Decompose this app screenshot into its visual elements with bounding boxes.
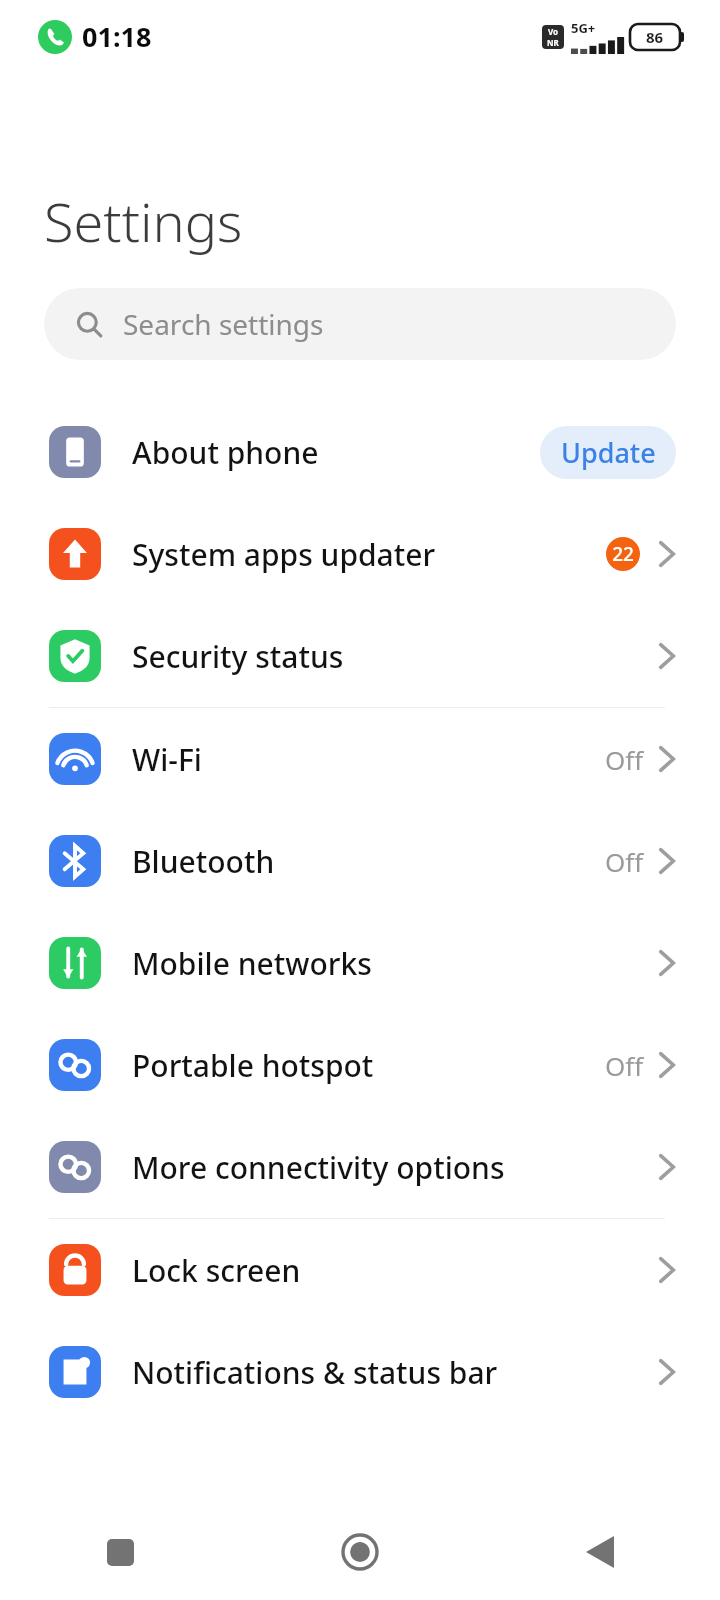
staticText: Off <box>605 1048 644 1083</box>
staticText: Security status <box>132 636 658 677</box>
staticText: Wi-Fi <box>132 739 605 780</box>
button[interactable]: Back <box>480 1504 720 1600</box>
staticText: Notifications & status bar <box>132 1352 658 1393</box>
staticText: About phone <box>132 432 540 473</box>
staticText: Portable hotspot <box>132 1045 605 1086</box>
staticText: Update <box>561 434 656 471</box>
staticText: Search settings <box>123 305 324 343</box>
staticText: Bluetooth <box>132 841 605 882</box>
button[interactable]: Lock screen <box>0 1219 720 1321</box>
button[interactable]: Mobile networks <box>0 912 720 1014</box>
staticText: Off <box>605 844 644 879</box>
staticText: 5G+ <box>571 19 596 37</box>
staticText: 22 <box>612 541 634 567</box>
staticText: System apps updater <box>132 534 606 575</box>
button[interactable]: About phone <box>0 401 720 503</box>
button[interactable]: Home <box>240 1504 480 1600</box>
staticText: Mobile networks <box>132 943 658 984</box>
staticText: 01:18 <box>82 18 152 55</box>
button[interactable]: Recent apps <box>0 1504 240 1600</box>
button[interactable]: More connectivity options <box>0 1116 720 1218</box>
staticText: Settings <box>44 184 243 258</box>
button[interactable]: Wi-Fi <box>0 708 720 810</box>
staticText: Off <box>605 742 644 777</box>
button[interactable]: Update <box>540 426 676 479</box>
button[interactable]: Bluetooth <box>0 810 720 912</box>
staticText: NR <box>547 37 559 48</box>
staticText: More connectivity options <box>132 1147 658 1188</box>
staticText: 86 <box>646 27 664 47</box>
button[interactable]: Security status <box>0 605 720 707</box>
button[interactable]: System apps updater <box>0 503 720 605</box>
button[interactable]: Search settings <box>44 288 676 360</box>
staticText: Vo <box>548 26 559 37</box>
button[interactable]: Portable hotspot <box>0 1014 720 1116</box>
button[interactable]: Notifications & status bar <box>0 1321 720 1423</box>
staticText: Lock screen <box>132 1250 658 1291</box>
